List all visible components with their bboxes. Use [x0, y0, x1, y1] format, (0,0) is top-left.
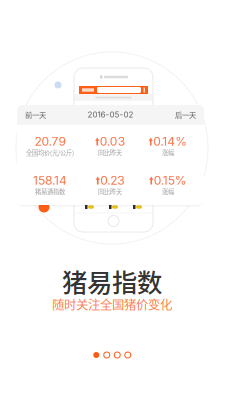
button[interactable]: 后一天: [167, 104, 204, 125]
staticText: 同比昨天: [98, 187, 122, 196]
button[interactable]: Page 1, current page: [93, 352, 99, 358]
button[interactable]: 前一天: [17, 104, 54, 125]
button[interactable]: Tab: [101, 204, 125, 210]
staticText: 0.23: [100, 173, 124, 188]
staticText: 猪易通指数: [35, 187, 65, 196]
staticText: 全国均价(元/公斤): [26, 148, 74, 157]
staticText: 猪易指数: [62, 263, 162, 299]
staticText: 158.14: [33, 173, 67, 188]
staticText: 2016-05-02: [87, 110, 133, 119]
staticText: 20.79: [34, 134, 65, 149]
staticText: 0.15%: [154, 173, 187, 188]
staticText: 涨幅: [162, 187, 174, 196]
staticText: 0.14%: [153, 134, 187, 149]
button[interactable]: Page 4: [125, 352, 131, 358]
staticText: 涨幅: [162, 148, 174, 157]
staticText: 随时关注全国猪价变化: [52, 295, 172, 313]
staticText: 0.03: [100, 134, 125, 149]
button[interactable]: Tab: [125, 204, 149, 210]
button[interactable]: Tab: [77, 204, 101, 210]
staticText: 前一天: [25, 109, 46, 120]
staticText: 同比昨天: [98, 148, 122, 157]
button[interactable]: Page 3: [114, 352, 120, 358]
button[interactable]: Page 2: [104, 352, 110, 358]
staticText: 后一天: [175, 109, 196, 120]
